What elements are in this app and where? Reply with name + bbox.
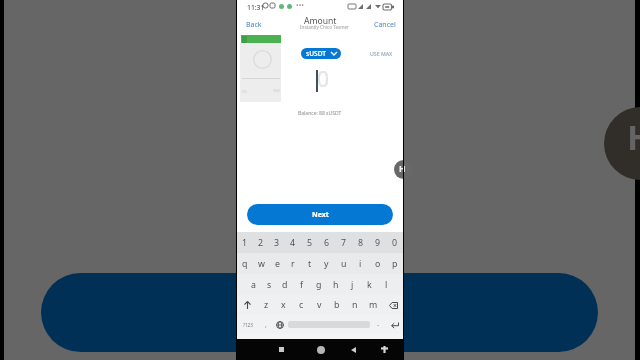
- staticText: Cancel: [374, 20, 396, 30]
- staticText: 5: [307, 237, 313, 249]
- staticText: q: [242, 258, 248, 270]
- button[interactable]: Home: [313, 342, 328, 357]
- button[interactable]: w: [253, 253, 269, 274]
- button[interactable]: Enter: [385, 315, 404, 334]
- staticText: 1: [242, 237, 248, 249]
- button[interactable]: u: [335, 253, 352, 274]
- button[interactable]: 2: [253, 232, 269, 253]
- button[interactable]: o: [369, 253, 386, 274]
- button[interactable]: k: [361, 274, 378, 295]
- staticText: H: [399, 163, 406, 175]
- staticText: m: [369, 299, 378, 311]
- staticText: o: [375, 258, 381, 270]
- staticText: t: [308, 258, 312, 270]
- button[interactable]: Change language: [272, 315, 287, 334]
- button[interactable]: d: [277, 274, 293, 295]
- staticText: r: [291, 258, 295, 270]
- button[interactable]: Back: [346, 342, 361, 357]
- button[interactable]: y: [318, 253, 335, 274]
- staticText: -: [377, 320, 380, 330]
- staticText: b: [334, 299, 340, 311]
- button[interactable]: 7: [335, 232, 352, 253]
- staticText: u: [341, 258, 347, 270]
- staticText: sUSDT: [306, 49, 327, 58]
- staticText: w: [258, 258, 265, 270]
- staticText: •••: [296, 1, 304, 11]
- button[interactable]: sUSDT: [301, 48, 341, 59]
- button[interactable]: j: [344, 274, 361, 295]
- staticText: Instantly Chico Tesmer: [300, 24, 349, 30]
- button[interactable]: Recents: [274, 342, 289, 357]
- staticText: 6: [324, 237, 330, 249]
- button[interactable]: x: [275, 295, 292, 315]
- button[interactable]: ?123: [236, 315, 259, 334]
- staticText: 2: [258, 237, 264, 249]
- staticText: 0: [392, 237, 398, 249]
- staticText: d: [282, 279, 288, 291]
- button[interactable]: a: [245, 274, 261, 295]
- staticText: Back: [246, 20, 262, 30]
- staticText: 9: [375, 237, 381, 249]
- button[interactable]: m: [364, 295, 382, 315]
- button[interactable]: 5: [301, 232, 318, 253]
- button[interactable]: Cancel: [371, 18, 399, 32]
- button[interactable]: ,: [259, 315, 272, 334]
- button[interactable]: Assistant: [377, 342, 392, 357]
- button[interactable]: l: [378, 274, 395, 295]
- button[interactable]: 1: [237, 232, 253, 253]
- staticText: a: [251, 279, 256, 291]
- staticText: p: [392, 258, 398, 270]
- staticText: j: [351, 279, 354, 291]
- staticText: 3: [274, 237, 280, 249]
- button[interactable]: s: [261, 274, 277, 295]
- button[interactable]: c: [292, 295, 310, 315]
- staticText: Amount: [304, 15, 337, 27]
- button[interactable]: e: [269, 253, 285, 274]
- button[interactable]: 0: [386, 232, 403, 253]
- staticText: USE MAX: [370, 50, 393, 57]
- button[interactable]: h: [327, 274, 344, 295]
- button[interactable]: 3: [269, 232, 285, 253]
- button[interactable]: i: [352, 253, 369, 274]
- staticText: y: [324, 258, 329, 270]
- button[interactable]: b: [328, 295, 346, 315]
- button[interactable]: Next: [247, 204, 393, 225]
- staticText: v: [317, 299, 322, 311]
- staticText: e: [275, 258, 280, 270]
- staticText: 7: [341, 237, 347, 249]
- staticText: 0: [317, 65, 330, 94]
- button[interactable]: f: [293, 274, 310, 295]
- staticText: 11:31: [247, 3, 265, 12]
- button[interactable]: Backspace: [382, 295, 404, 315]
- button[interactable]: 8: [352, 232, 369, 253]
- staticText: 8: [358, 237, 364, 249]
- button[interactable]: 4: [285, 232, 301, 253]
- button[interactable]: z: [258, 295, 275, 315]
- button[interactable]: t: [301, 253, 318, 274]
- button[interactable]: -: [371, 315, 385, 334]
- button[interactable]: 9: [369, 232, 386, 253]
- staticText: x: [281, 299, 286, 311]
- staticText: Balance: 88 sUSDT: [298, 110, 342, 117]
- staticText: ,: [265, 320, 267, 330]
- button[interactable]: n: [346, 295, 364, 315]
- button[interactable]: Shift: [236, 295, 258, 315]
- staticText: k: [367, 279, 372, 291]
- staticText: g: [316, 279, 322, 291]
- staticText: s: [267, 279, 272, 291]
- staticText: h: [333, 279, 339, 291]
- button[interactable]: g: [310, 274, 327, 295]
- button[interactable]: USE MAX: [367, 48, 396, 59]
- staticText: ?123: [243, 322, 253, 328]
- button[interactable]: Back: [243, 18, 265, 32]
- staticText: c: [299, 299, 304, 311]
- button[interactable]: q: [237, 253, 253, 274]
- button[interactable]: v: [310, 295, 328, 315]
- button[interactable]: r: [285, 253, 301, 274]
- staticText: f: [300, 279, 304, 291]
- button[interactable]: 6: [318, 232, 335, 253]
- staticText: Next: [312, 210, 329, 220]
- button[interactable]: p: [386, 253, 403, 274]
- staticText: z: [264, 299, 269, 311]
